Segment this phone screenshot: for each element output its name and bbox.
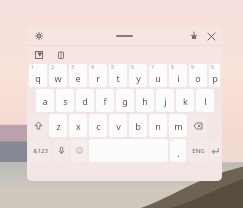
button[interactable]: ' <box>170 139 186 162</box>
staticText: j <box>164 95 167 107</box>
button[interactable]: Enter <box>210 139 220 162</box>
button[interactable]: f <box>96 89 114 112</box>
button[interactable]: Clipboard <box>54 48 68 62</box>
staticText: &123 <box>33 147 48 155</box>
staticText: l <box>204 95 207 107</box>
staticText: r <box>96 72 100 84</box>
button[interactable]: z <box>49 114 67 137</box>
button[interactable]: Settings <box>32 29 46 43</box>
staticText: f <box>103 95 107 107</box>
staticText: 4 <box>91 64 94 71</box>
staticText: n <box>155 120 161 132</box>
button[interactable]: 8 <box>169 64 187 87</box>
staticText: 5 <box>111 64 114 71</box>
button[interactable]: Shift <box>29 114 47 137</box>
staticText: p <box>212 72 218 84</box>
staticText: 8 <box>171 64 174 71</box>
staticText: e <box>75 72 81 84</box>
staticText: ' <box>172 139 174 146</box>
button[interactable]: Close <box>204 29 218 43</box>
staticText: g <box>122 95 128 107</box>
staticText: k <box>183 95 188 107</box>
button[interactable]: s <box>56 89 74 112</box>
button[interactable]: Backspace <box>189 114 207 137</box>
button[interactable]: 7 <box>149 64 167 87</box>
button[interactable]: 9 <box>189 64 207 87</box>
button[interactable]: Emoji <box>71 139 87 162</box>
button[interactable]: b <box>129 114 147 137</box>
staticText: 7 <box>151 64 154 71</box>
staticText: 1 <box>31 64 34 71</box>
staticText: z <box>56 120 61 132</box>
staticText: i <box>177 72 180 84</box>
staticText: h <box>142 95 148 107</box>
button[interactable]: 0 <box>209 64 220 87</box>
staticText: . <box>177 147 180 159</box>
staticText: q <box>35 72 41 84</box>
staticText: d <box>82 95 88 107</box>
button[interactable]: k <box>176 89 194 112</box>
staticText: c <box>96 120 101 132</box>
staticText: y <box>136 72 141 84</box>
staticText: s <box>63 95 68 107</box>
button[interactable]: l <box>196 89 214 112</box>
button[interactable]: n <box>149 114 167 137</box>
button[interactable]: x <box>69 114 87 137</box>
button[interactable]: v <box>109 114 127 137</box>
staticText: 0 <box>211 64 214 71</box>
button[interactable]: Dock keyboard <box>187 29 201 43</box>
button[interactable]: d <box>76 89 94 112</box>
button[interactable]: ENG <box>188 139 208 162</box>
staticText: 2 <box>51 64 54 71</box>
staticText: w <box>54 72 62 84</box>
button[interactable]: 6 <box>129 64 147 87</box>
button[interactable]: 2 <box>49 64 67 87</box>
button[interactable]: a <box>36 89 54 112</box>
staticText: o <box>195 72 201 84</box>
button[interactable]: &123 <box>29 139 51 162</box>
staticText: x <box>76 120 81 132</box>
staticText: ENG <box>192 147 205 155</box>
button[interactable]: 3 <box>69 64 87 87</box>
staticText: 3 <box>71 64 74 71</box>
staticText: t <box>116 72 120 84</box>
staticText: v <box>116 120 121 132</box>
button[interactable]: 5 <box>109 64 127 87</box>
button[interactable]: 1 <box>29 64 47 87</box>
button[interactable]: Voice input <box>53 139 69 162</box>
button[interactable]: c <box>89 114 107 137</box>
staticText: m <box>174 120 183 132</box>
button[interactable]: h <box>136 89 154 112</box>
staticText: 9 <box>191 64 194 71</box>
staticText: a <box>42 95 48 107</box>
button[interactable]: j <box>156 89 174 112</box>
staticText: u <box>155 72 161 84</box>
staticText: b <box>135 120 141 132</box>
staticText: 6 <box>131 64 134 71</box>
button[interactable]: Drag handle <box>116 35 133 37</box>
button[interactable]: m <box>169 114 187 137</box>
button[interactable]: 4 <box>89 64 107 87</box>
button[interactable]: g <box>116 89 134 112</box>
button[interactable]: Stickers <box>32 48 46 62</box>
